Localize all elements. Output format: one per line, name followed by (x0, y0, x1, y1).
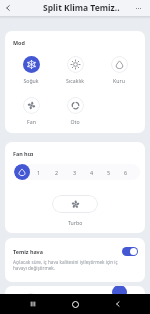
staticText: 5 (107, 169, 111, 176)
staticText: Split Klima Temiz.. (43, 2, 120, 14)
button[interactable]: Back (0, 0, 16, 16)
button[interactable]: Mode option (23, 293, 39, 309)
button[interactable]: Home (65, 294, 85, 314)
staticText: 6 (124, 169, 128, 176)
button[interactable]: Oto (53, 97, 97, 125)
button[interactable]: 4 (83, 169, 100, 176)
button[interactable]: 6 (117, 169, 134, 176)
staticText: Oto (70, 118, 80, 125)
staticText: Soğuk (23, 77, 39, 84)
staticText: Sıcaklık (66, 77, 84, 84)
staticText: 4 (90, 169, 94, 176)
button[interactable]: 2 (48, 169, 66, 176)
button[interactable]: 5 (100, 169, 117, 176)
button[interactable]: Selected mode (112, 286, 127, 300)
button[interactable]: Back (108, 294, 128, 314)
button[interactable]: Recent apps (23, 294, 43, 314)
staticText: 2 (55, 169, 59, 176)
staticText: Fan hızı (13, 150, 34, 157)
staticText: 1 (37, 169, 41, 176)
button[interactable]: Fan (9, 97, 53, 125)
button[interactable]: Kuru (97, 56, 141, 84)
staticText: Kuru (113, 77, 125, 84)
button[interactable]: Temiz hava (13, 247, 138, 256)
button[interactable]: Auto fan speed (14, 164, 30, 180)
button[interactable]: 3 (66, 169, 83, 176)
staticText: Temiz hava (13, 248, 43, 255)
staticText: Fan (27, 118, 36, 125)
button[interactable]: Soğuk (9, 56, 53, 84)
staticText: 3 (73, 169, 77, 176)
staticText: Açılacak süre, iç hava kalitesini iyileş… (13, 259, 118, 271)
button[interactable]: Sıcaklık (53, 56, 97, 84)
button[interactable]: 1 (30, 169, 48, 176)
staticText: Mod (13, 39, 25, 46)
button[interactable] (52, 195, 98, 213)
button[interactable]: More options (130, 0, 146, 16)
staticText: Turbo (68, 219, 83, 226)
